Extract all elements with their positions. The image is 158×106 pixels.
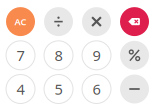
staticText: 7 [16, 46, 24, 65]
button[interactable]: 7 [6, 41, 35, 70]
staticText: 4 [16, 79, 24, 99]
button[interactable]: Delete [120, 7, 149, 36]
button[interactable]: Divide [44, 7, 73, 36]
staticText: 9 [92, 46, 100, 65]
button[interactable]: 4 [6, 74, 35, 103]
button[interactable]: Percent [120, 41, 149, 70]
button[interactable]: Minus [120, 74, 149, 103]
button[interactable]: 8 [44, 41, 73, 70]
staticText: 6 [92, 79, 100, 99]
button[interactable]: AC [6, 7, 35, 36]
button[interactable]: 9 [82, 41, 111, 70]
staticText: AC [14, 15, 26, 28]
button[interactable]: 6 [82, 74, 111, 103]
staticText: 8 [54, 46, 62, 65]
staticText: 5 [54, 79, 62, 99]
button[interactable]: 5 [44, 74, 73, 103]
button[interactable]: Multiply [82, 7, 111, 36]
